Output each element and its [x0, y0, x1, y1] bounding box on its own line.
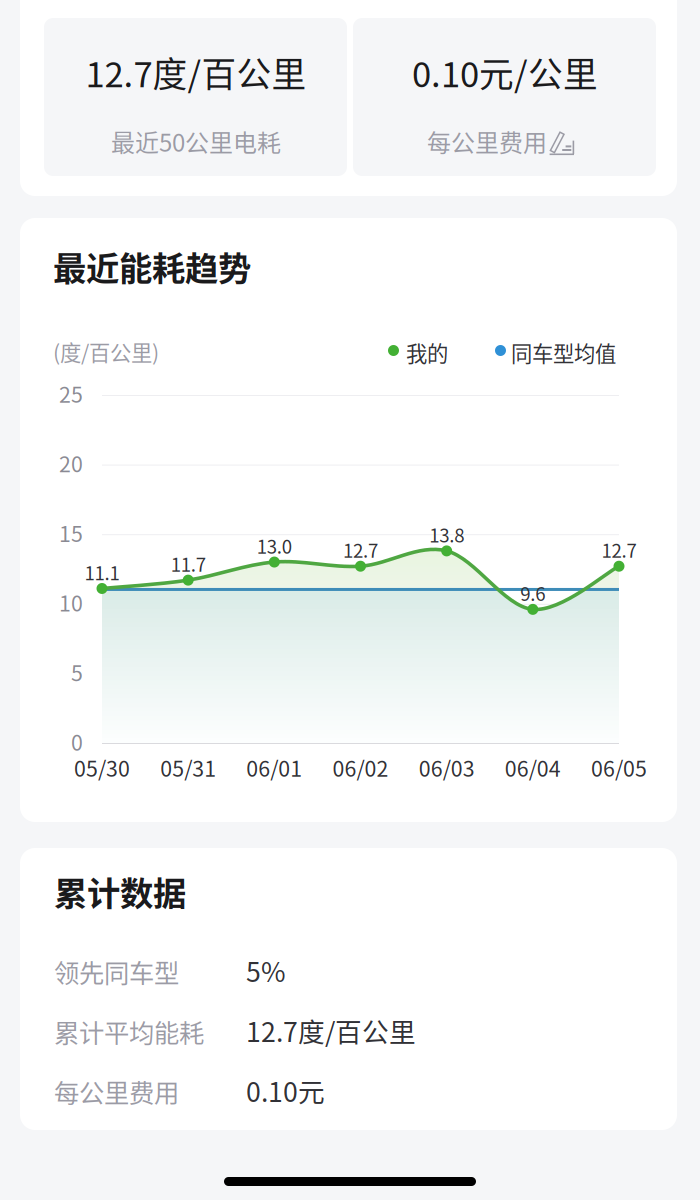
staticText: 最近50公里电耗: [111, 124, 281, 159]
staticText: 06/03: [419, 752, 475, 783]
staticText: 0.10元/公里: [412, 47, 598, 97]
staticText: 12.7: [601, 536, 636, 563]
staticText: 最近能耗趋势: [53, 242, 251, 290]
staticText: 25: [59, 378, 83, 409]
staticText: (度/百公里): [53, 336, 159, 367]
staticText: 06/01: [246, 752, 302, 783]
staticText: 13.0: [257, 532, 292, 559]
staticText: 10: [59, 587, 83, 618]
staticText: 累计数据: [54, 867, 186, 915]
staticText: 0: [71, 726, 83, 757]
staticText: 15: [59, 517, 83, 548]
staticText: 同车型均值: [511, 337, 616, 368]
staticText: 5%: [246, 951, 286, 990]
staticText: 06/05: [591, 752, 647, 783]
staticText: 06/02: [332, 752, 388, 783]
staticText: 06/04: [505, 752, 561, 783]
staticText: 领先同车型: [54, 953, 179, 990]
staticText: 13.8: [429, 521, 464, 548]
staticText: 9.6: [520, 579, 545, 606]
staticText: 12.7度/百公里: [85, 47, 306, 97]
button[interactable]: 12.7度/百公里: [44, 18, 347, 176]
staticText: 20: [59, 448, 83, 478]
staticText: 5: [71, 656, 83, 687]
staticText: 累计平均能耗: [54, 1013, 204, 1050]
staticText: 05/30: [74, 752, 130, 783]
staticText: 每公里费用: [427, 124, 547, 159]
button[interactable]: 0.10元/公里: [353, 18, 656, 176]
staticText: 每公里费用: [54, 1073, 179, 1110]
staticText: 12.7: [343, 536, 378, 563]
staticText: 12.7度/百公里: [246, 1011, 416, 1050]
staticText: 11.1: [84, 558, 119, 585]
staticText: 11.7: [171, 550, 206, 577]
staticText: 05/31: [160, 752, 216, 783]
staticText: 我的: [406, 337, 448, 368]
staticText: 0.10元: [246, 1071, 325, 1110]
